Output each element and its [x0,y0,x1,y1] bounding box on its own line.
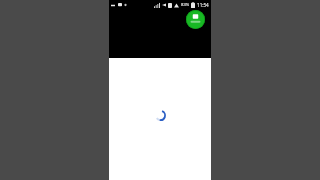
button[interactable]: Stop recording [186,10,205,29]
staticText: 83% [181,2,190,8]
staticText: 11:54 [197,2,209,8]
